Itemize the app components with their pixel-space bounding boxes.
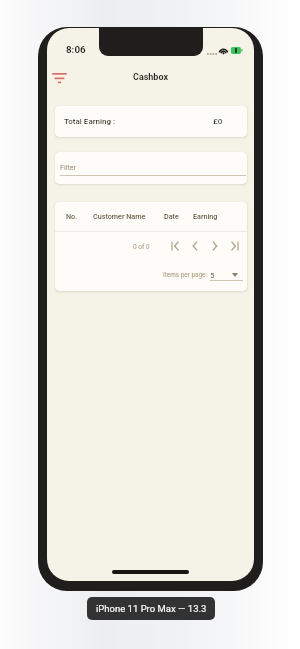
staticText: Date <box>164 212 179 220</box>
button[interactable]: Items per page <box>228 268 241 281</box>
button[interactable]: Previous page <box>188 239 201 252</box>
staticText: No. <box>66 212 78 220</box>
staticText: iPhone 11 Pro Max — 13.3 <box>96 603 207 614</box>
staticText: Filter <box>60 163 77 171</box>
staticText: Cashbox <box>133 72 168 83</box>
staticText: Total Earning : <box>64 117 116 126</box>
staticText: Items per page: <box>163 271 208 279</box>
button[interactable]: First page <box>168 239 181 252</box>
staticText: 8:06 <box>66 44 86 55</box>
button[interactable]: Next page <box>208 239 221 252</box>
staticText: Customer Name <box>93 212 146 220</box>
staticText: Earning <box>193 212 218 220</box>
button[interactable]: Last page <box>228 239 241 252</box>
staticText: 5 <box>210 271 215 280</box>
staticText: £0 <box>213 117 223 126</box>
staticText: 0 of 0 <box>133 243 150 251</box>
button[interactable]: Menu <box>49 68 70 89</box>
